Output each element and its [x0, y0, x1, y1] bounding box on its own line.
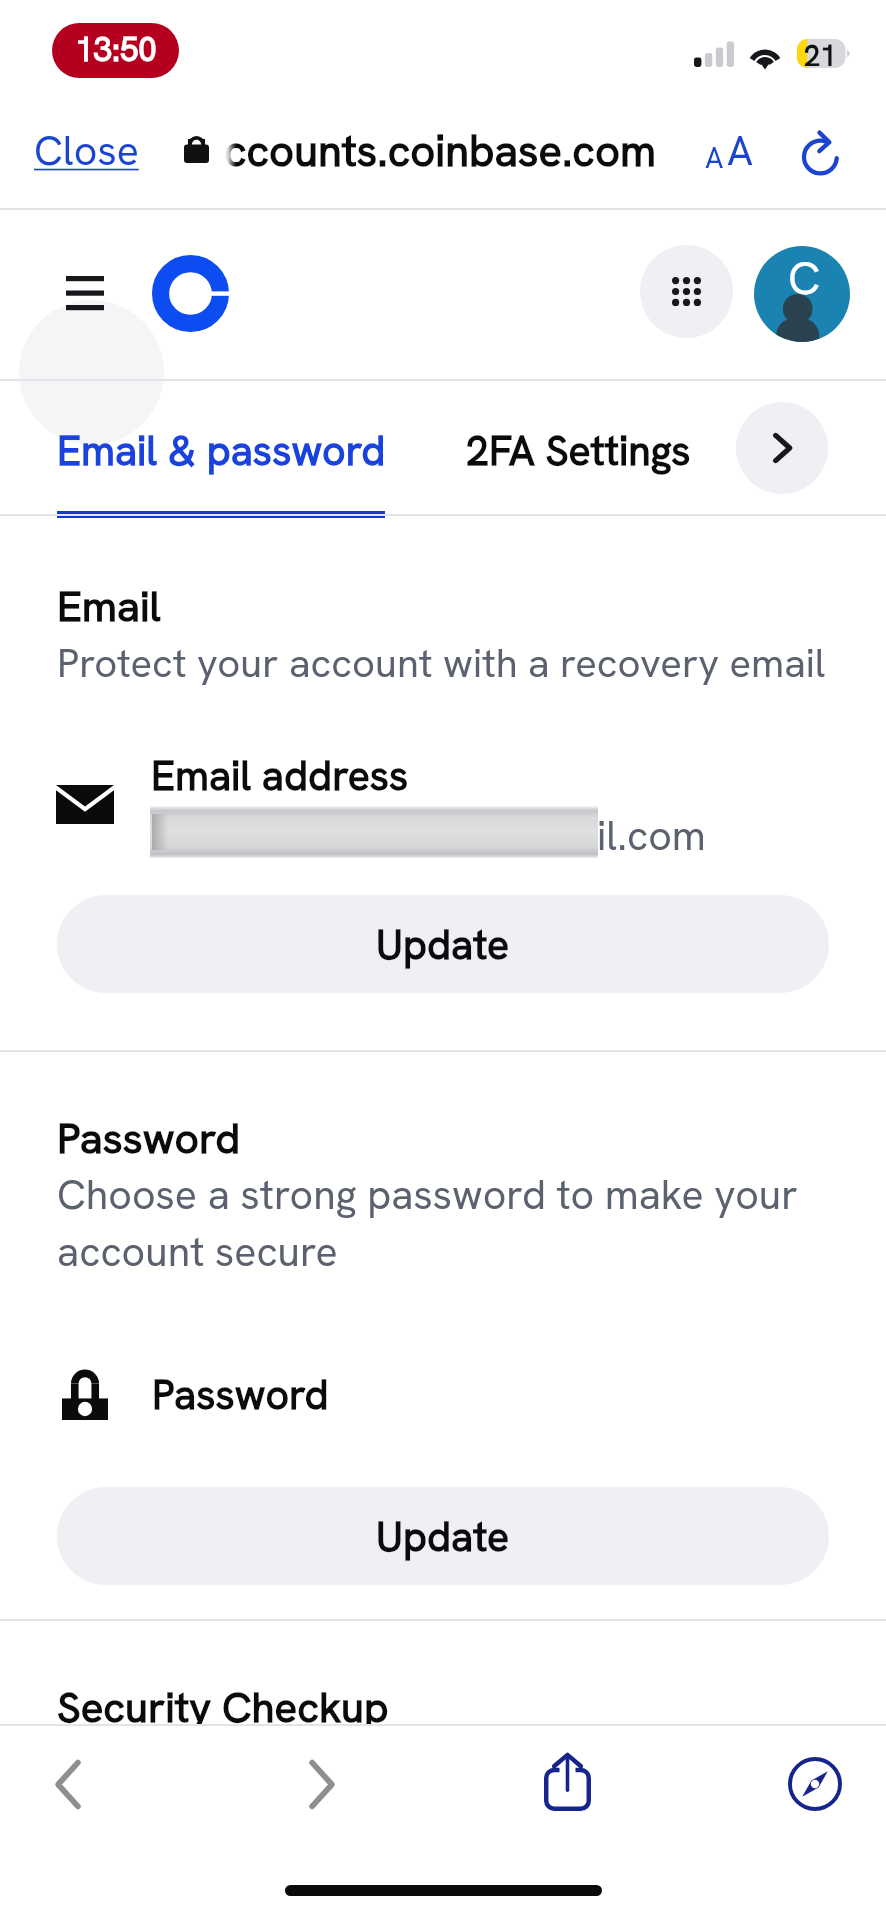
- button[interactable]: Email & password: [57, 424, 386, 477]
- button[interactable]: Apps: [640, 245, 733, 338]
- button[interactable]: Update: [57, 1487, 829, 1585]
- staticText: Update: [376, 1510, 510, 1563]
- button[interactable]: Safari tabs: [770, 1739, 860, 1829]
- staticText: Security Checkup: [57, 1680, 389, 1735]
- staticText: 2FA Settings: [466, 424, 691, 477]
- staticText: Email: [57, 578, 161, 633]
- staticText: Email address: [151, 749, 409, 802]
- staticText: Password: [57, 1110, 241, 1165]
- staticText: Email & password: [57, 424, 386, 477]
- staticText: 21: [804, 37, 837, 66]
- button[interactable]: Back: [23, 1739, 113, 1829]
- staticText: 13:50: [75, 28, 157, 71]
- button[interactable]: Forward: [277, 1739, 367, 1829]
- staticText: C: [788, 248, 821, 308]
- staticText: ccounts.coinbase.com: [224, 122, 656, 179]
- staticText: Protect your account with a recovery ema…: [57, 637, 826, 689]
- staticText: Update: [376, 918, 510, 971]
- button[interactable]: More tabs: [736, 402, 828, 494]
- staticText: A: [705, 139, 724, 177]
- staticText: Close: [34, 124, 139, 177]
- button[interactable]: Share: [522, 1736, 612, 1826]
- staticText: il.com: [597, 809, 706, 862]
- button[interactable]: 2FA Settings: [466, 424, 691, 477]
- button[interactable]: Open menu: [48, 258, 122, 328]
- button[interactable]: Update: [57, 895, 829, 993]
- staticText: A: [727, 124, 754, 177]
- staticText: Password: [152, 1368, 329, 1421]
- button[interactable]: Coinbase home: [152, 255, 229, 332]
- button[interactable]: Account: [754, 246, 850, 342]
- staticText: Choose a strong password to make your ac…: [57, 1168, 798, 1278]
